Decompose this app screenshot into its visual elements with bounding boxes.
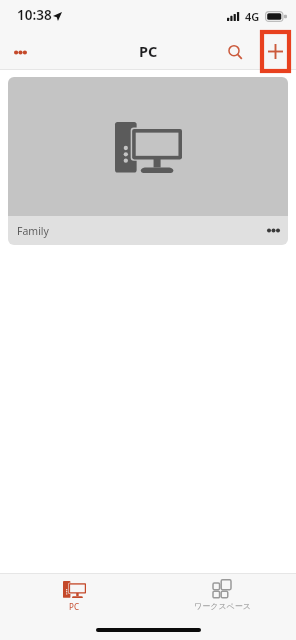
button[interactable]: Add <box>254 30 296 70</box>
button[interactable]: PC <box>0 574 148 620</box>
button[interactable]: Options <box>258 216 288 245</box>
staticText: 10:38 <box>17 6 52 24</box>
button[interactable]: Search <box>212 30 254 70</box>
staticText: PC <box>69 601 79 612</box>
staticText: ワークスペース <box>194 601 251 611</box>
button[interactable]: More options <box>0 30 40 70</box>
staticText: PC <box>139 41 158 61</box>
button[interactable]: ワークスペース <box>148 574 296 620</box>
button[interactable]: Family <box>8 77 288 245</box>
staticText: Family <box>17 224 49 238</box>
staticText: 4G <box>245 9 260 24</box>
